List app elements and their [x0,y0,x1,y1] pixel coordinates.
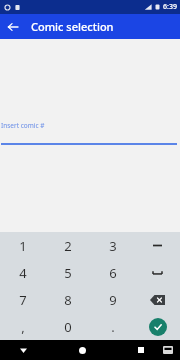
button[interactable]: 4 [0,259,45,286]
staticText: Comic selection [31,19,114,34]
staticText: 6:39 [163,2,177,12]
button[interactable]: 5 [45,259,90,286]
button[interactable]: Insert comic # [1,121,177,145]
button[interactable]: Home [73,341,91,359]
staticText: 9 [109,291,117,309]
button[interactable]: . [90,313,135,340]
staticText: 8 [64,291,72,309]
staticText: . [111,318,115,336]
staticText: , [21,318,25,336]
staticText: 0 [64,318,72,336]
button[interactable]: Recents [132,341,150,359]
staticText: 1 [19,237,27,255]
staticText: 7 [19,291,27,309]
staticText: 5 [64,264,72,282]
staticText: Insert comic # [1,121,45,130]
button[interactable]: Done [135,313,180,340]
staticText: 6 [109,264,117,282]
button[interactable]: Dash [135,232,180,259]
button[interactable]: 8 [45,286,90,313]
button[interactable]: 0 [45,313,90,340]
button[interactable]: 9 [90,286,135,313]
button[interactable]: Hide keyboard [161,343,175,357]
button[interactable]: 2 [45,232,90,259]
button[interactable]: Space [135,259,180,286]
button[interactable]: 7 [0,286,45,313]
staticText: 3 [109,237,117,255]
button[interactable]: Backspace [135,286,180,313]
button[interactable]: Back [0,14,25,39]
button[interactable]: 3 [90,232,135,259]
staticText: 2 [64,237,72,255]
button[interactable]: 6 [90,259,135,286]
button[interactable]: , [0,313,45,340]
button[interactable]: 1 [0,232,45,259]
staticText: 4 [19,264,27,282]
button[interactable]: Back [14,341,32,359]
